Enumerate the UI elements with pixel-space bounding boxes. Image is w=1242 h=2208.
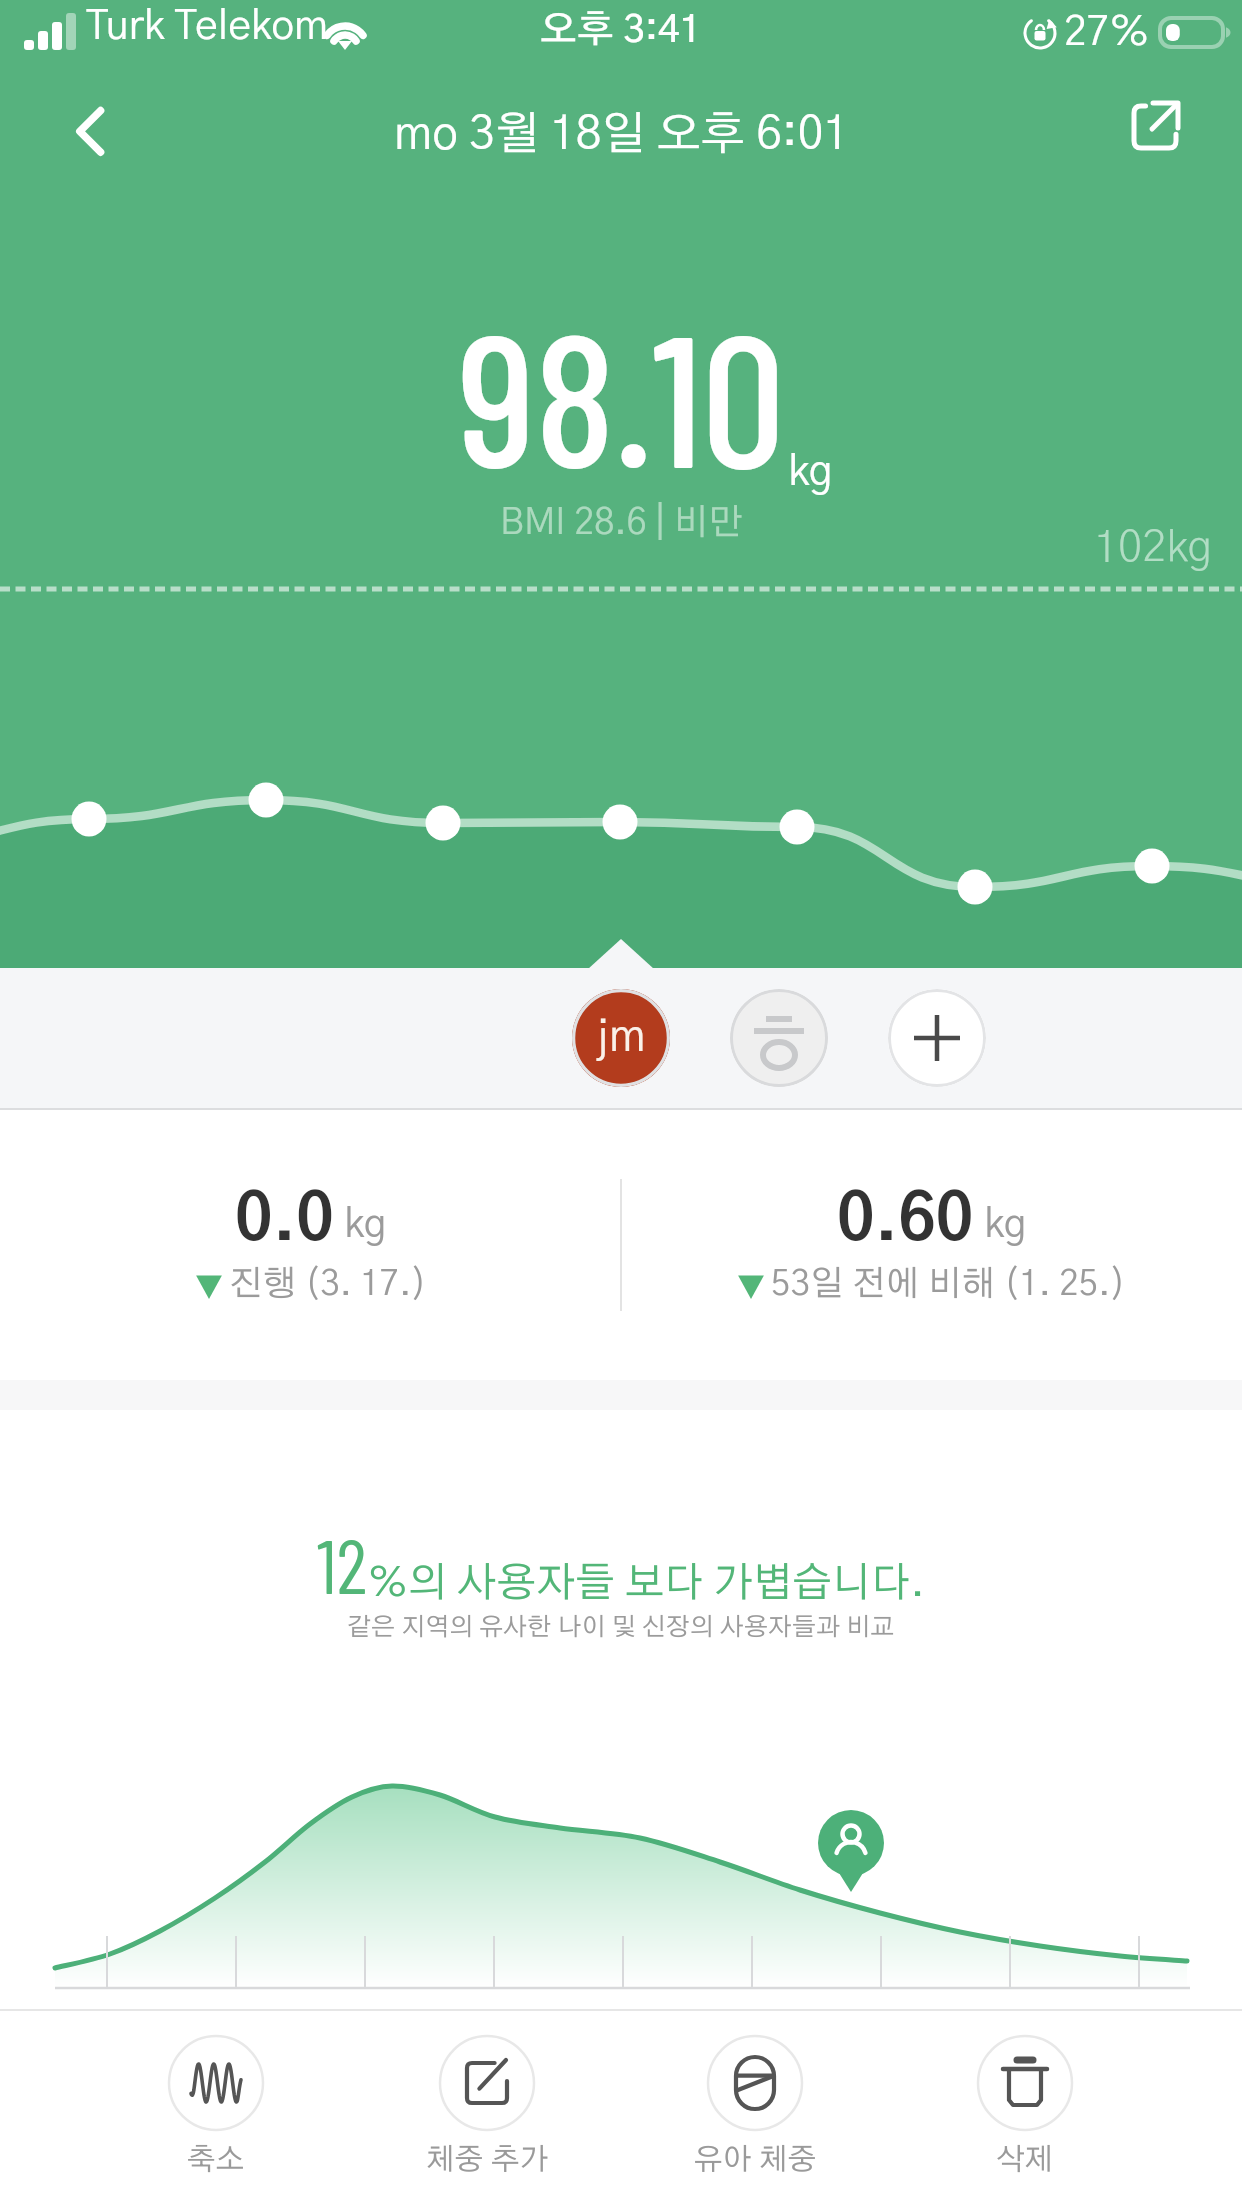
staticText: 53일 전에 비해 (1. 25.) bbox=[771, 1267, 1126, 1302]
staticText: jm bbox=[597, 1016, 646, 1060]
button[interactable]: Add weight bbox=[377, 2029, 597, 2199]
button[interactable]: 0.0 bbox=[0, 1110, 621, 1380]
button[interactable]: Back bbox=[41, 87, 121, 167]
staticText: kg bbox=[344, 1205, 387, 1245]
staticText: kg bbox=[788, 451, 833, 493]
staticText: 0.60 bbox=[837, 1189, 974, 1253]
staticText: 오후 3:41 bbox=[540, 12, 702, 50]
button[interactable]: Other profile bbox=[730, 989, 828, 1087]
staticText: 0.0 bbox=[235, 1189, 334, 1253]
staticText: kg bbox=[984, 1205, 1027, 1245]
button[interactable]: Collapse chart bbox=[106, 2029, 326, 2199]
staticText: 12 bbox=[317, 1518, 368, 1609]
button[interactable]: Delete bbox=[915, 2029, 1135, 2199]
staticText: 같은 지역의 유사한 나이 및 신장의 사용자들과 비교 bbox=[347, 1615, 895, 1640]
staticText: 축소 bbox=[187, 2145, 245, 2175]
staticText: %의 사용자들 보다 가볍습니다. bbox=[368, 1563, 925, 1604]
staticText: BMI 28.6 | 비만 bbox=[500, 505, 743, 541]
staticText: mo 3월 18일 오후 6:01 bbox=[394, 112, 849, 158]
staticText: 삭제 bbox=[996, 2145, 1054, 2175]
button[interactable]: Add measurement bbox=[888, 989, 986, 1087]
button[interactable]: jm bbox=[572, 989, 670, 1087]
staticText: 체중 추가 bbox=[426, 2145, 549, 2175]
staticText: 98.10 bbox=[458, 282, 785, 505]
staticText: 102kg bbox=[1094, 526, 1213, 570]
button[interactable]: Baby weight bbox=[645, 2029, 865, 2199]
staticText: 27% bbox=[1064, 12, 1150, 53]
staticText: Turk Telekom bbox=[86, 6, 329, 47]
button[interactable]: Share bbox=[1115, 87, 1195, 167]
staticText: 진행 (3. 17.) bbox=[229, 1267, 427, 1302]
button[interactable]: 0.60 bbox=[621, 1110, 1242, 1380]
staticText: 유아 체중 bbox=[694, 2145, 817, 2175]
